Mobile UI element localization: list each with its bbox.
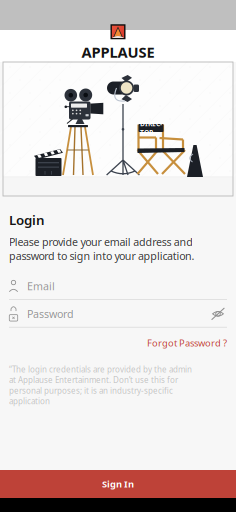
button[interactable]: Show password (209, 305, 227, 322)
staticText: Login (9, 211, 45, 229)
button[interactable]: Sign In (0, 470, 236, 498)
staticText: Sign In (102, 478, 134, 490)
staticText: Email (27, 279, 55, 293)
staticText: Forgot Password ? (147, 337, 227, 349)
staticText: APPLAUSE (81, 42, 154, 62)
staticText: Password (27, 307, 74, 321)
staticText: DIRECTOR (140, 119, 162, 137)
staticText: “The login credentials are provided by t… (9, 364, 192, 406)
button[interactable]: Forgot Password ? (147, 334, 227, 352)
staticText: Please provide your email address and pa… (9, 235, 195, 263)
